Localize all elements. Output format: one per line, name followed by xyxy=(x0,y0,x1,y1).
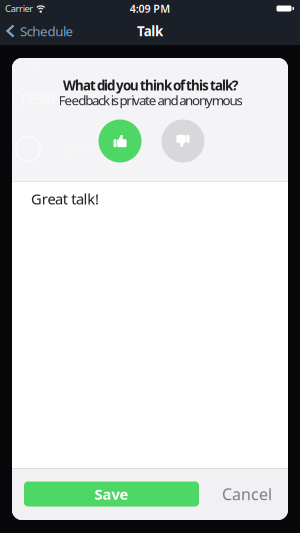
staticText: Feedback is private and anonymous xyxy=(59,91,242,109)
staticText: 4:09 PM xyxy=(130,1,170,16)
staticText: What did you think of this talk? xyxy=(63,76,238,94)
staticText: Creat xyxy=(7,84,58,110)
button[interactable]: Thumbs up xyxy=(98,119,141,162)
staticText: Dan Sc xyxy=(63,138,110,157)
button[interactable]: Cancel xyxy=(222,483,272,505)
staticText: 0pm xyxy=(26,56,46,68)
staticText: Talk xyxy=(137,22,163,40)
staticText: Great talk! xyxy=(31,189,99,208)
button[interactable]: Save xyxy=(24,481,199,506)
staticText: Schedule xyxy=(20,22,74,40)
staticText: Save xyxy=(94,484,128,504)
staticText: Cancel xyxy=(222,483,272,505)
staticText: Carrier xyxy=(5,2,33,15)
button[interactable]: Schedule xyxy=(0,22,74,40)
button[interactable]: Thumbs down xyxy=(161,119,204,162)
